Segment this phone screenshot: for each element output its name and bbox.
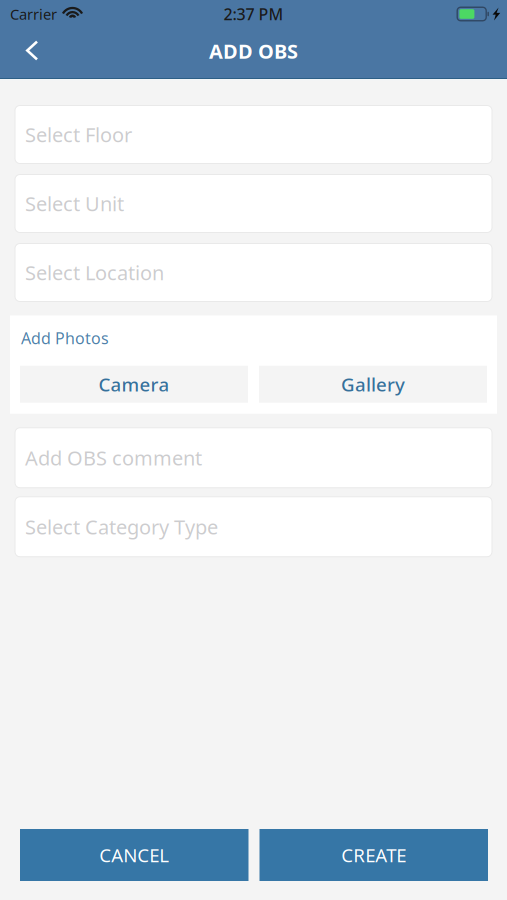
button[interactable]: CREATE xyxy=(259,829,488,881)
staticText: Select Location xyxy=(25,259,164,286)
button[interactable]: Select Floor xyxy=(15,105,492,163)
staticText: Camera xyxy=(98,372,169,397)
staticText: 2:37 PM xyxy=(223,3,283,25)
button[interactable]: Gallery xyxy=(259,366,487,403)
button[interactable]: Add OBS comment xyxy=(15,428,492,488)
button[interactable]: Select Unit xyxy=(15,174,492,232)
staticText: CREATE xyxy=(341,843,406,867)
staticText: ADD OBS xyxy=(209,38,298,64)
staticText: CANCEL xyxy=(99,843,169,867)
button[interactable]: Camera xyxy=(20,366,248,403)
staticText: Carrier xyxy=(10,4,57,24)
staticText: Select Floor xyxy=(25,121,132,148)
staticText: Select Unit xyxy=(25,190,124,217)
button[interactable]: Back xyxy=(6,28,58,72)
staticText: Add Photos xyxy=(21,327,109,349)
button[interactable]: Select Location xyxy=(15,243,492,301)
staticText: Select Category Type xyxy=(25,513,218,540)
button[interactable]: CANCEL xyxy=(20,829,248,881)
staticText: Gallery xyxy=(341,372,405,397)
button[interactable]: Select Category Type xyxy=(15,497,492,557)
staticText: Add OBS comment xyxy=(25,444,202,471)
